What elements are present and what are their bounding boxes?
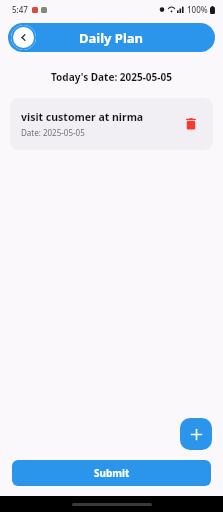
staticText: 5:47 [12,4,28,15]
button[interactable]: Add task [180,418,212,450]
button[interactable]: visit customer at nirma [10,98,213,150]
staticText: Today's Date: 2025-05-05 [51,70,172,84]
staticText: visit customer at nirma [21,110,144,124]
staticText: 100% [187,4,208,15]
staticText: Date: 2025-05-05 [21,127,85,138]
staticText: Daily Plan [79,29,144,47]
button[interactable]: Delete task [180,113,202,135]
button[interactable]: Back [11,25,36,50]
button[interactable]: Submit [12,460,211,486]
staticText: Submit [94,466,130,480]
